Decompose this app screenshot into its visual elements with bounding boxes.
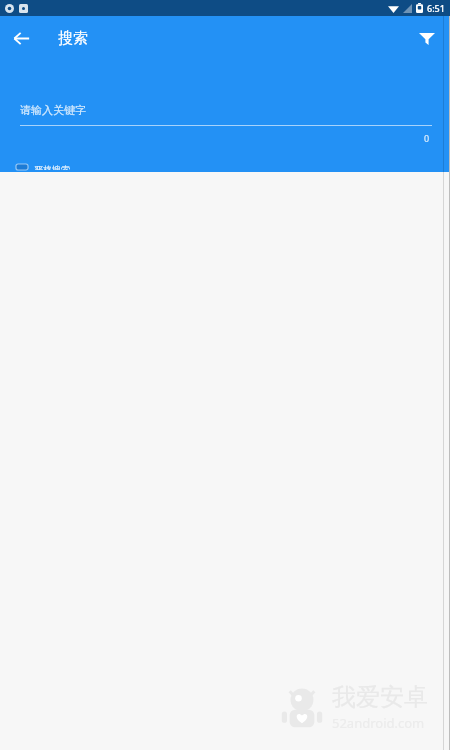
staticText: 严格搜索 — [34, 164, 70, 170]
button[interactable]: Filter — [411, 22, 443, 54]
staticText: 6:51 — [427, 2, 445, 14]
button[interactable]: Back — [6, 23, 36, 53]
staticText: 52android.com — [332, 714, 425, 732]
button[interactable]: 严格搜索 — [14, 162, 72, 172]
staticText: 0 — [424, 132, 430, 144]
staticText: 搜索 — [58, 29, 88, 48]
button[interactable]: 请输入关键字 — [20, 100, 432, 120]
staticText: 请输入关键字 — [20, 103, 86, 117]
staticText: 我爱安卓 — [332, 682, 428, 712]
